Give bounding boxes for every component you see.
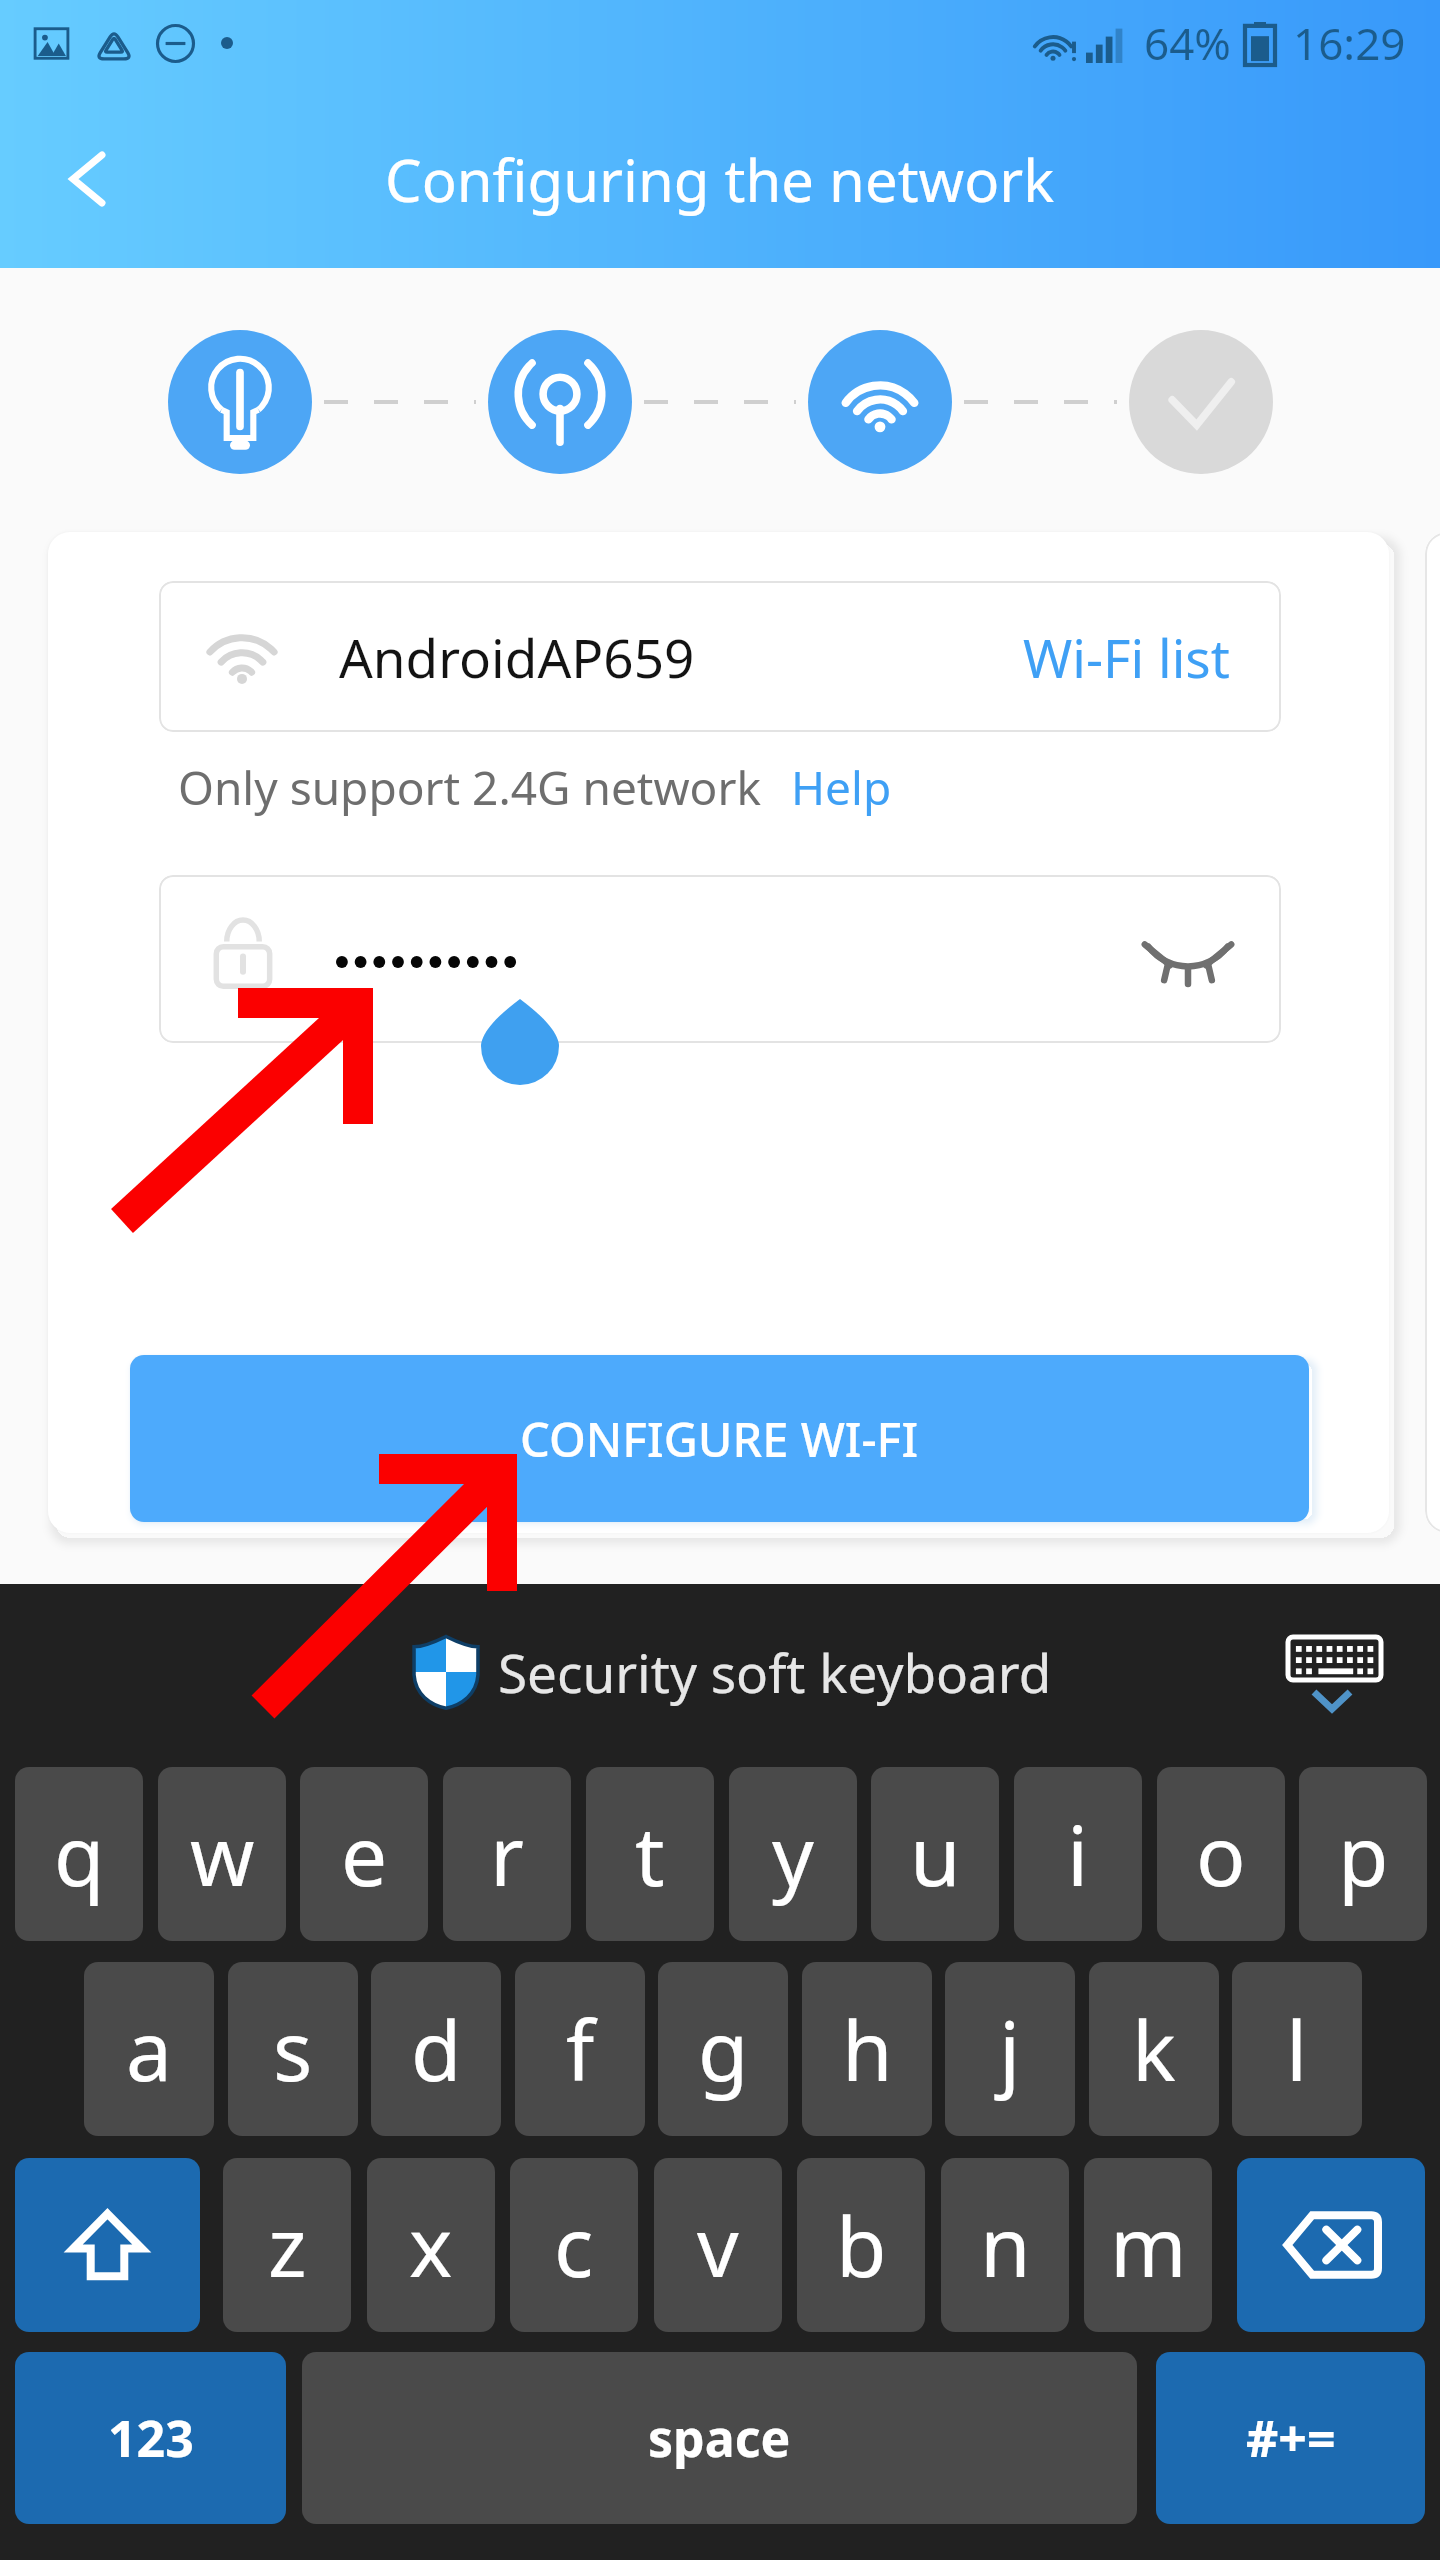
staticText: 64% xyxy=(1144,13,1231,73)
staticText: CONFIGURE WI-FI xyxy=(520,1407,919,1471)
staticText: l xyxy=(1286,1993,1308,2105)
staticText: g xyxy=(698,1993,749,2105)
button[interactable]: o xyxy=(1157,1767,1285,1941)
button[interactable]: x xyxy=(367,2158,495,2332)
button[interactable]: s xyxy=(228,1962,358,2136)
staticText: 16:29 xyxy=(1293,13,1406,73)
staticText: AndroidAP659 xyxy=(339,621,695,693)
staticText: r xyxy=(490,1798,524,1910)
staticText: n xyxy=(980,2189,1031,2301)
button[interactable]: f xyxy=(515,1962,645,2136)
staticText: i xyxy=(1067,1798,1089,1910)
staticText: space xyxy=(648,2404,791,2472)
button[interactable]: d xyxy=(371,1962,501,2136)
staticText: j xyxy=(999,1993,1021,2105)
button[interactable]: Hide keyboard xyxy=(1284,1637,1386,1715)
button[interactable]: k xyxy=(1089,1962,1219,2136)
staticText: #+= xyxy=(1246,2404,1336,2472)
button[interactable]: Back xyxy=(40,129,140,229)
staticText: a xyxy=(126,1993,173,2105)
staticText: p xyxy=(1338,1798,1389,1910)
button[interactable]: Show password xyxy=(1113,899,1263,1019)
button[interactable]: r xyxy=(443,1767,571,1941)
staticText: v xyxy=(697,2189,739,2301)
button[interactable]: Show password xyxy=(159,875,1281,1043)
button[interactable]: t xyxy=(586,1767,714,1941)
button[interactable]: q xyxy=(15,1767,143,1941)
button[interactable]: w xyxy=(158,1767,286,1941)
button[interactable]: Shift xyxy=(15,2158,200,2332)
button[interactable]: c xyxy=(510,2158,638,2332)
staticText: h xyxy=(842,1993,893,2105)
button[interactable]: Backspace xyxy=(1237,2158,1425,2332)
staticText: w xyxy=(190,1798,255,1910)
staticText: Wi-Fi list xyxy=(1023,621,1230,693)
button[interactable]: u xyxy=(871,1767,999,1941)
button[interactable]: l xyxy=(1232,1962,1362,2136)
button[interactable]: z xyxy=(223,2158,351,2332)
staticText: m xyxy=(1110,2189,1187,2301)
staticText: y xyxy=(772,1798,814,1910)
staticText: Only support 2.4G network xyxy=(178,756,762,819)
staticText: f xyxy=(566,1993,595,2105)
button[interactable]: i xyxy=(1014,1767,1142,1941)
staticText: Help xyxy=(791,756,892,819)
staticText: b xyxy=(836,2189,887,2301)
staticText: o xyxy=(1196,1798,1246,1910)
button[interactable]: a xyxy=(84,1962,214,2136)
staticText: k xyxy=(1132,1993,1176,2105)
button[interactable]: y xyxy=(729,1767,857,1941)
staticText: q xyxy=(54,1798,105,1910)
staticText: Configuring the network xyxy=(385,140,1055,219)
button[interactable]: v xyxy=(654,2158,782,2332)
staticText: z xyxy=(268,2189,307,2301)
staticText: e xyxy=(341,1798,388,1910)
staticText: s xyxy=(273,1993,313,2105)
button[interactable]: p xyxy=(1299,1767,1427,1941)
button[interactable]: Help xyxy=(762,742,910,833)
staticText: t xyxy=(635,1798,665,1910)
button[interactable]: b xyxy=(797,2158,925,2332)
button[interactable]: space xyxy=(302,2352,1137,2524)
button[interactable]: 123 xyxy=(15,2352,286,2524)
button[interactable]: j xyxy=(945,1962,1075,2136)
button[interactable]: m xyxy=(1084,2158,1212,2332)
button[interactable]: g xyxy=(658,1962,788,2136)
staticText: u xyxy=(910,1798,961,1910)
button[interactable]: AndroidAP659 xyxy=(159,581,1281,732)
button[interactable]: Wi-Fi list xyxy=(995,601,1281,713)
staticText: Security soft keyboard xyxy=(498,1636,1052,1708)
button[interactable]: n xyxy=(941,2158,1069,2332)
staticText: x xyxy=(409,2189,453,2301)
button[interactable]: #+= xyxy=(1156,2352,1425,2524)
button[interactable]: h xyxy=(802,1962,932,2136)
button[interactable]: CONFIGURE WI-FI xyxy=(130,1355,1309,1522)
button[interactable]: e xyxy=(300,1767,428,1941)
staticText: 123 xyxy=(108,2404,194,2472)
staticText: d xyxy=(411,1993,462,2105)
staticText: c xyxy=(554,2189,594,2301)
